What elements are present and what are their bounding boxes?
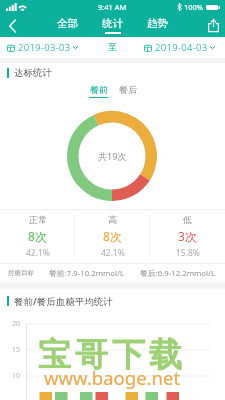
button[interactable]: 全部 — [55, 14, 80, 37]
staticText: 达标统计 — [14, 67, 52, 79]
staticText: 正常 — [29, 214, 47, 225]
button[interactable]: 趋势 — [145, 14, 170, 37]
staticText: 15.8% — [176, 247, 200, 259]
staticText: 控糖目标 — [8, 269, 34, 277]
staticText: 3次 — [178, 228, 197, 244]
button[interactable]: 低 — [150, 210, 225, 263]
button[interactable]: 2019-04-03 — [144, 39, 215, 56]
button[interactable]: Back — [0, 14, 24, 37]
staticText: 趋势 — [147, 17, 168, 30]
button[interactable]: 正常 — [0, 210, 75, 263]
staticText: 2019-03-03 — [18, 41, 71, 54]
staticText: 100% — [184, 2, 204, 12]
staticText: 20 — [12, 319, 21, 329]
staticText: 餐后 — [119, 84, 137, 95]
button[interactable]: 餐后 — [115, 84, 140, 98]
staticText: 餐前/餐后血糖平均统计 — [14, 295, 113, 308]
staticText: 2019-04-03 — [155, 41, 208, 54]
staticText: 共19次 — [98, 150, 127, 162]
button[interactable]: 2019-03-03 — [7, 39, 78, 56]
staticText: 宝哥下载 — [36, 334, 184, 376]
staticText: 至 — [108, 42, 117, 53]
staticText: 15 — [12, 345, 21, 355]
staticText: 全部 — [57, 17, 78, 30]
button[interactable]: 餐前 — [86, 84, 111, 98]
staticText: 8次 — [28, 228, 47, 244]
staticText: 9:41 AM — [98, 2, 127, 12]
button[interactable]: 高 — [75, 210, 150, 263]
staticText: 42.1% — [101, 247, 125, 259]
staticText: 餐前 — [90, 84, 108, 95]
staticText: 10 — [12, 371, 21, 381]
button[interactable]: 统计 — [100, 14, 125, 37]
staticText: 统计 — [102, 17, 123, 30]
staticText: 高 — [108, 214, 117, 225]
staticText: 42.1% — [26, 247, 50, 259]
staticText: www.baoge.net — [44, 365, 181, 390]
staticText: 低 — [183, 214, 192, 225]
button[interactable]: Share — [201, 14, 225, 37]
staticText: 8次 — [103, 228, 122, 244]
staticText: 餐前:7.9-10.2mmol/L — [49, 268, 124, 279]
staticText: 餐后:6.9-12.2mmol/L — [140, 268, 215, 279]
